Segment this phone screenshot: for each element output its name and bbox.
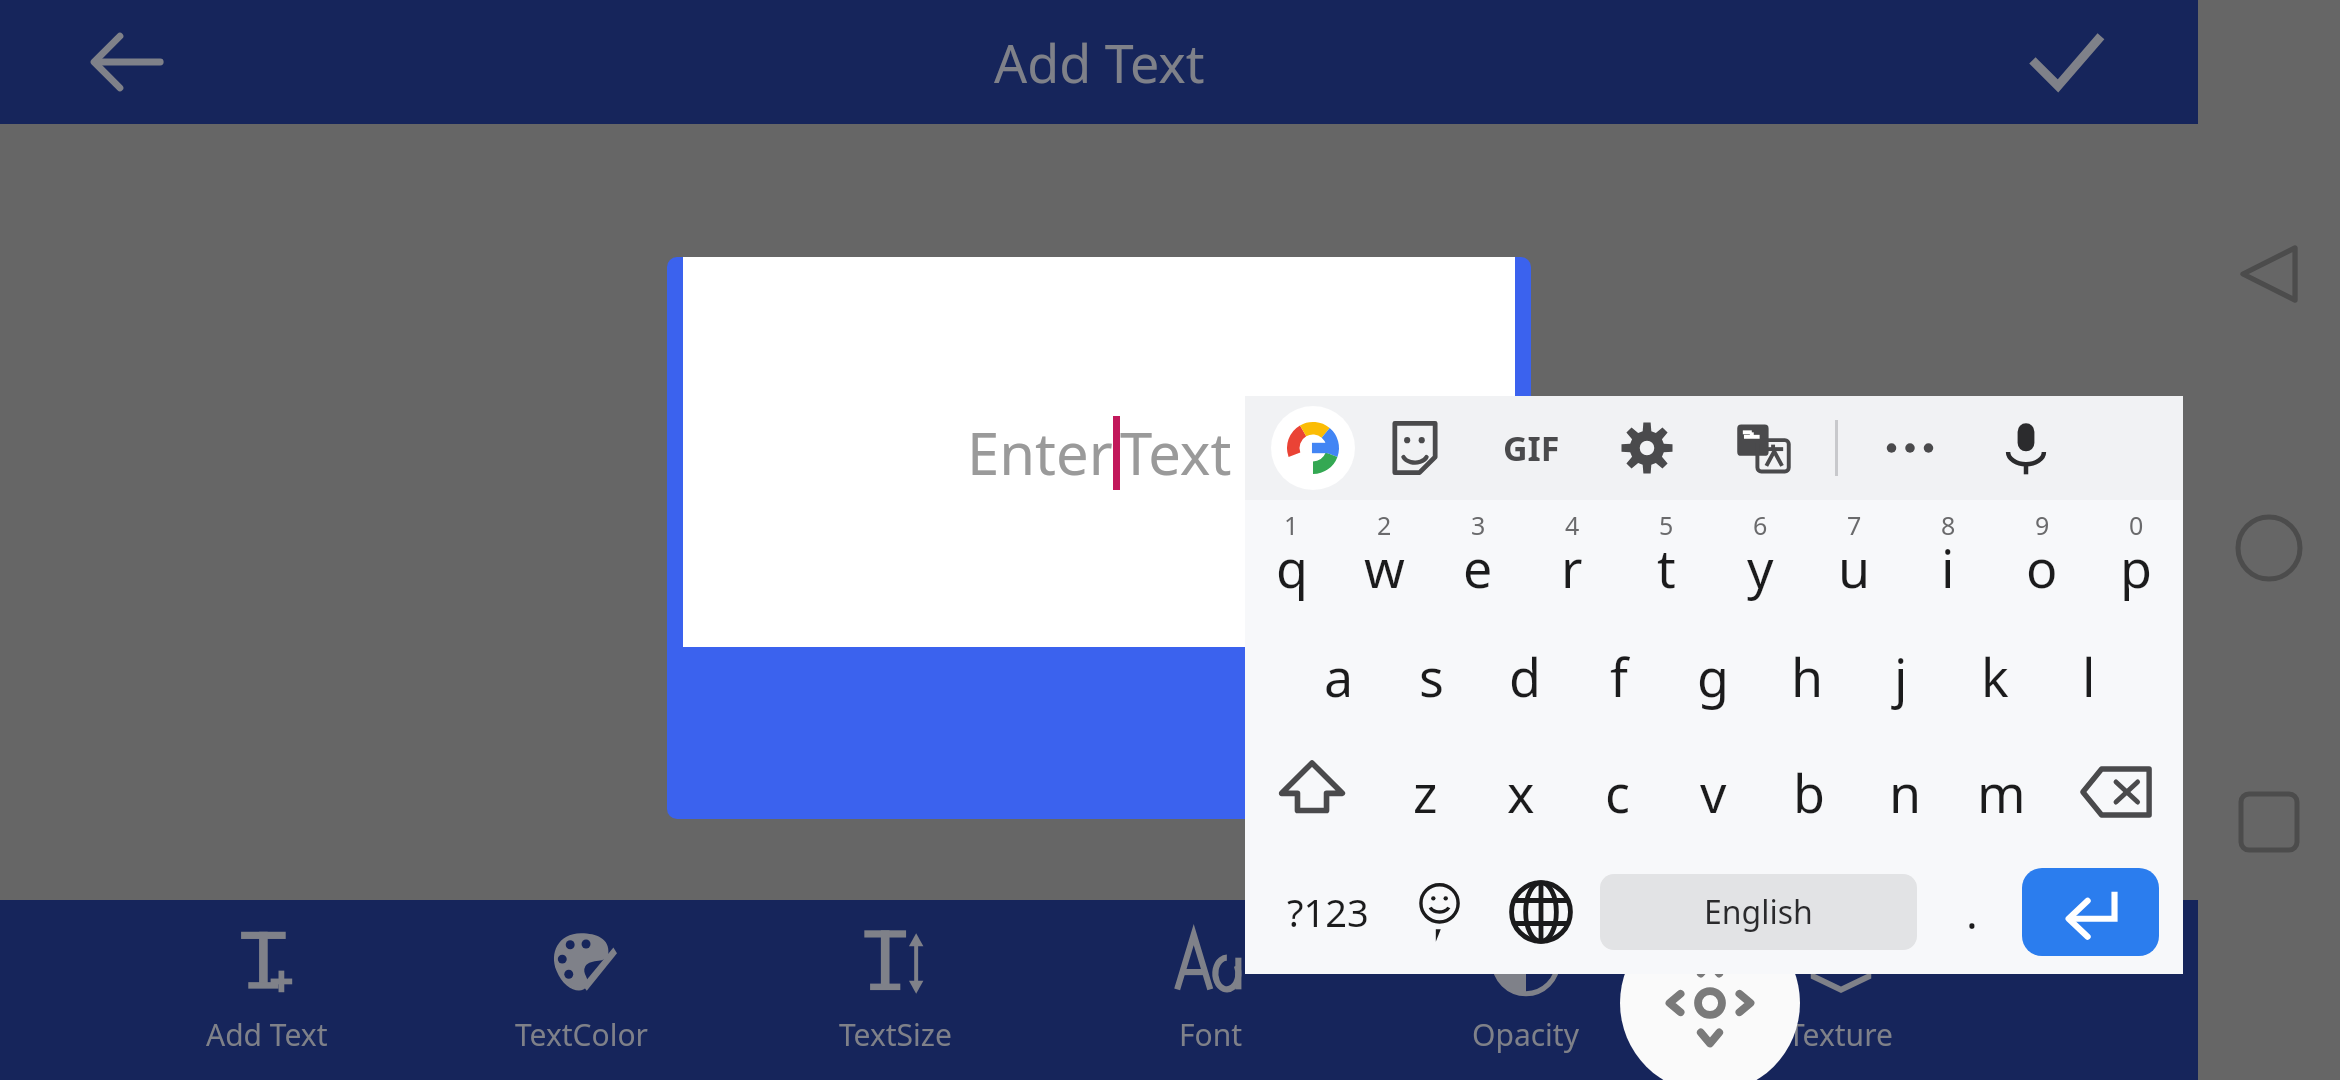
staticText: 2 xyxy=(1377,508,1392,542)
staticText: w xyxy=(1364,532,1405,603)
button[interactable]: n xyxy=(1857,734,1953,850)
button[interactable]: b xyxy=(1761,734,1857,850)
staticText: z xyxy=(1413,757,1438,828)
staticText: TextColor xyxy=(515,1014,648,1055)
button[interactable]: 6 xyxy=(1713,500,1807,618)
button[interactable]: g xyxy=(1666,618,1760,734)
button[interactable]: s xyxy=(1385,618,1478,734)
staticText: g xyxy=(1697,641,1729,712)
button[interactable]: 0 xyxy=(2089,500,2183,618)
staticText: Font xyxy=(1179,1014,1243,1055)
button[interactable]: 9 xyxy=(1995,500,2089,618)
staticText: TextSize xyxy=(839,1014,952,1055)
button[interactable]: j xyxy=(1854,618,1948,734)
button[interactable]: 2 xyxy=(1338,500,1431,618)
button[interactable]: l xyxy=(2042,618,2136,734)
button[interactable]: GIF xyxy=(1495,412,1567,484)
staticText: y xyxy=(1747,532,1774,603)
button[interactable]: Translate xyxy=(1727,412,1799,484)
button[interactable]: Back xyxy=(72,8,180,116)
staticText: e xyxy=(1463,532,1493,603)
staticText: b xyxy=(1793,757,1825,828)
staticText: r xyxy=(1561,532,1583,603)
button[interactable]: Texture xyxy=(1683,900,1998,1080)
staticText: . xyxy=(1966,882,1978,942)
staticText: English xyxy=(1704,890,1813,934)
staticText: 8 xyxy=(1941,508,1956,542)
button[interactable]: c xyxy=(1569,734,1665,850)
button[interactable]: Sticker xyxy=(1379,412,1451,484)
staticText: p xyxy=(2120,532,2152,603)
staticText: 1 xyxy=(1284,508,1299,542)
staticText: c xyxy=(1605,757,1630,828)
button[interactable]: m xyxy=(1953,734,2049,850)
button[interactable]: Backspace xyxy=(2049,734,2183,850)
staticText: s xyxy=(1419,641,1444,712)
button[interactable]: f xyxy=(1572,618,1666,734)
button[interactable]: Google xyxy=(1271,406,1355,490)
staticText: Add Text xyxy=(206,1014,328,1055)
staticText: m xyxy=(1977,757,2026,828)
button[interactable]: a xyxy=(1292,618,1385,734)
staticText: l xyxy=(2082,641,2096,712)
staticText: a xyxy=(1324,641,1354,712)
button[interactable]: More xyxy=(1874,412,1946,484)
staticText: Text xyxy=(1120,413,1232,492)
button[interactable]: Opacity xyxy=(1368,900,1683,1080)
button[interactable]: h xyxy=(1760,618,1854,734)
button[interactable]: ?123 xyxy=(1263,850,1392,974)
button[interactable]: . xyxy=(1927,850,2016,974)
button[interactable]: TextColor xyxy=(424,900,738,1080)
button[interactable]: Recents xyxy=(2223,776,2315,868)
staticText: v xyxy=(1700,757,1727,828)
button[interactable]: v xyxy=(1665,734,1761,850)
staticText: 7 xyxy=(1847,508,1862,542)
staticText: GIF xyxy=(1503,425,1560,471)
staticText: h xyxy=(1791,641,1824,712)
button[interactable]: 4 xyxy=(1525,500,1619,618)
button[interactable]: Shift xyxy=(1245,734,1378,850)
button[interactable]: Voice input xyxy=(1990,412,2062,484)
button[interactable]: 1 xyxy=(1245,500,1338,618)
button[interactable]: Font xyxy=(1053,900,1368,1080)
button[interactable]: Enter xyxy=(2022,868,2159,956)
button[interactable]: x xyxy=(1473,734,1569,850)
button[interactable]: z xyxy=(1378,734,1473,850)
button[interactable]: Move xyxy=(1620,913,1800,1080)
button[interactable]: Done xyxy=(2012,8,2120,116)
staticText: u xyxy=(1838,532,1871,603)
button[interactable]: Enter xyxy=(683,257,1515,647)
staticText: q xyxy=(1276,532,1308,603)
staticText: n xyxy=(1889,757,1922,828)
button[interactable]: Add Text xyxy=(110,900,424,1080)
staticText: Enter xyxy=(967,413,1113,492)
staticText: 5 xyxy=(1659,508,1674,542)
button[interactable]: 3 xyxy=(1431,500,1525,618)
button[interactable]: 8 xyxy=(1901,500,1995,618)
staticText: 4 xyxy=(1565,508,1580,542)
staticText: Texture xyxy=(1788,1014,1893,1055)
button[interactable]: Change language xyxy=(1491,850,1590,974)
button[interactable]: Home xyxy=(2223,502,2315,594)
button[interactable]: English xyxy=(1600,874,1917,950)
button[interactable]: d xyxy=(1478,618,1572,734)
staticText: ?123 xyxy=(1287,886,1369,938)
button[interactable]: Settings xyxy=(1611,412,1683,484)
staticText: 9 xyxy=(2035,508,2050,542)
staticText: Opacity xyxy=(1472,1014,1579,1055)
staticText: 6 xyxy=(1753,508,1768,542)
button[interactable]: 5 xyxy=(1619,500,1713,618)
staticText: f xyxy=(1610,641,1628,712)
button[interactable]: k xyxy=(1948,618,2042,734)
staticText: i xyxy=(1941,532,1955,603)
staticText: t xyxy=(1657,532,1676,603)
button[interactable]: 7 xyxy=(1807,500,1901,618)
button[interactable]: Emoji xyxy=(1392,850,1491,974)
button[interactable]: TextSize xyxy=(738,900,1053,1080)
staticText: k xyxy=(1981,641,2009,712)
button[interactable]: Back xyxy=(2223,228,2315,320)
staticText: 0 xyxy=(2129,508,2144,542)
